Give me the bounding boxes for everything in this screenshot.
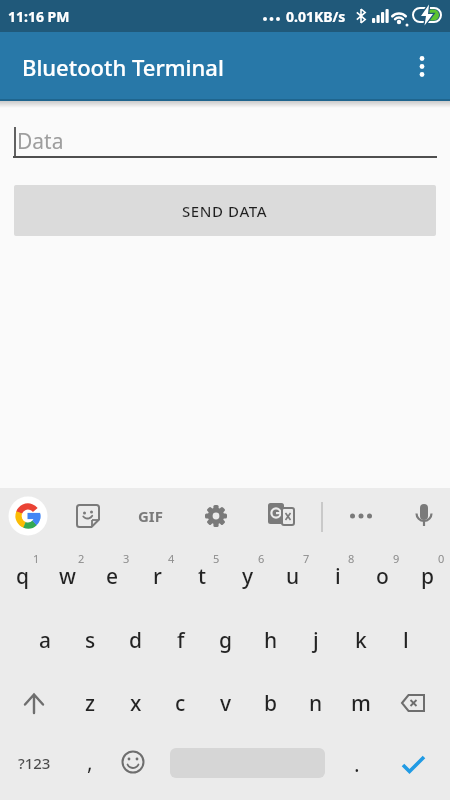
staticText: c (175, 689, 186, 718)
button[interactable]: q (0, 548, 45, 604)
staticText: n (309, 689, 323, 718)
button[interactable] (6, 494, 50, 538)
button[interactable]: t (180, 548, 225, 604)
button[interactable]: . (312, 742, 402, 786)
staticText: 2 (78, 551, 85, 566)
staticText: j (313, 626, 319, 655)
button[interactable]: w (45, 548, 90, 604)
button[interactable]: p (405, 548, 450, 604)
button[interactable] (111, 741, 155, 785)
staticText: b (264, 689, 278, 718)
staticText: 8 (348, 551, 355, 566)
button[interactable]: m (338, 675, 383, 731)
button[interactable]: d (113, 612, 158, 668)
button[interactable]: j (293, 612, 338, 668)
staticText: 0.01KB/s (286, 7, 346, 26)
button[interactable]: Data (0, 101, 450, 161)
staticText: a (39, 626, 52, 655)
staticText: r (153, 562, 162, 591)
staticText: 6 (258, 551, 265, 566)
button[interactable]: SEND DATA (14, 185, 436, 236)
button[interactable]: z (68, 675, 113, 731)
button[interactable]: GIF (105, 494, 195, 538)
button[interactable]: f (158, 612, 203, 668)
staticText: f (177, 626, 185, 655)
staticText: g (219, 626, 233, 655)
staticText: 9 (393, 551, 400, 566)
button[interactable]: h (248, 612, 293, 668)
staticText: e (106, 562, 119, 591)
button[interactable] (258, 494, 302, 538)
button[interactable]: b (248, 675, 293, 731)
staticText: 4 (168, 551, 175, 566)
staticText: u (286, 562, 300, 591)
staticText: x (130, 689, 142, 718)
staticText: GIF (138, 506, 163, 526)
staticText: . (354, 750, 360, 779)
staticText: 3 (123, 551, 130, 566)
button[interactable]: , (45, 740, 135, 784)
button[interactable]: l (383, 612, 428, 668)
staticText: Data (17, 127, 64, 156)
staticText: m (351, 689, 371, 718)
button[interactable]: i (315, 548, 360, 604)
staticText: t (198, 562, 207, 591)
button[interactable] (400, 45, 443, 88)
button[interactable]: u (270, 548, 315, 604)
button[interactable] (339, 494, 383, 538)
staticText: 0 (438, 551, 445, 566)
button[interactable] (390, 741, 434, 785)
staticText: 7 (303, 551, 310, 566)
staticText: 5 (213, 551, 220, 566)
staticText: 11:16 PM (8, 7, 70, 26)
staticText: v (220, 689, 232, 718)
button[interactable]: y (225, 548, 270, 604)
staticText: ?123 (18, 753, 51, 773)
staticText: SEND DATA (182, 201, 268, 221)
button[interactable] (66, 494, 110, 538)
staticText: d (129, 626, 143, 655)
staticText: , (87, 748, 93, 777)
button[interactable]: x (113, 675, 158, 731)
staticText: i (335, 562, 341, 591)
button[interactable]: g (203, 612, 248, 668)
button[interactable]: o (360, 548, 405, 604)
staticText: z (85, 689, 96, 718)
button[interactable]: k (338, 612, 383, 668)
button[interactable]: c (158, 675, 203, 731)
button[interactable]: s (68, 612, 113, 668)
button[interactable]: ?123 (0, 741, 79, 785)
staticText: h (264, 626, 278, 655)
button[interactable]: v (203, 675, 248, 731)
button[interactable] (390, 681, 436, 725)
staticText: w (59, 562, 76, 591)
button[interactable] (402, 494, 446, 538)
staticText: p (421, 562, 435, 591)
staticText: y (242, 562, 254, 591)
staticText: o (376, 562, 389, 591)
staticText: 1 (33, 551, 40, 566)
button[interactable]: e (90, 548, 135, 604)
button[interactable]: n (293, 675, 338, 731)
button[interactable] (11, 681, 57, 725)
staticText: q (16, 562, 30, 591)
button[interactable]: r (135, 548, 180, 604)
staticText: k (355, 626, 367, 655)
staticText: s (85, 626, 96, 655)
button[interactable]: a (23, 612, 68, 668)
staticText: Bluetooth Terminal (22, 52, 224, 82)
button[interactable] (194, 494, 238, 538)
staticText: l (403, 626, 409, 655)
